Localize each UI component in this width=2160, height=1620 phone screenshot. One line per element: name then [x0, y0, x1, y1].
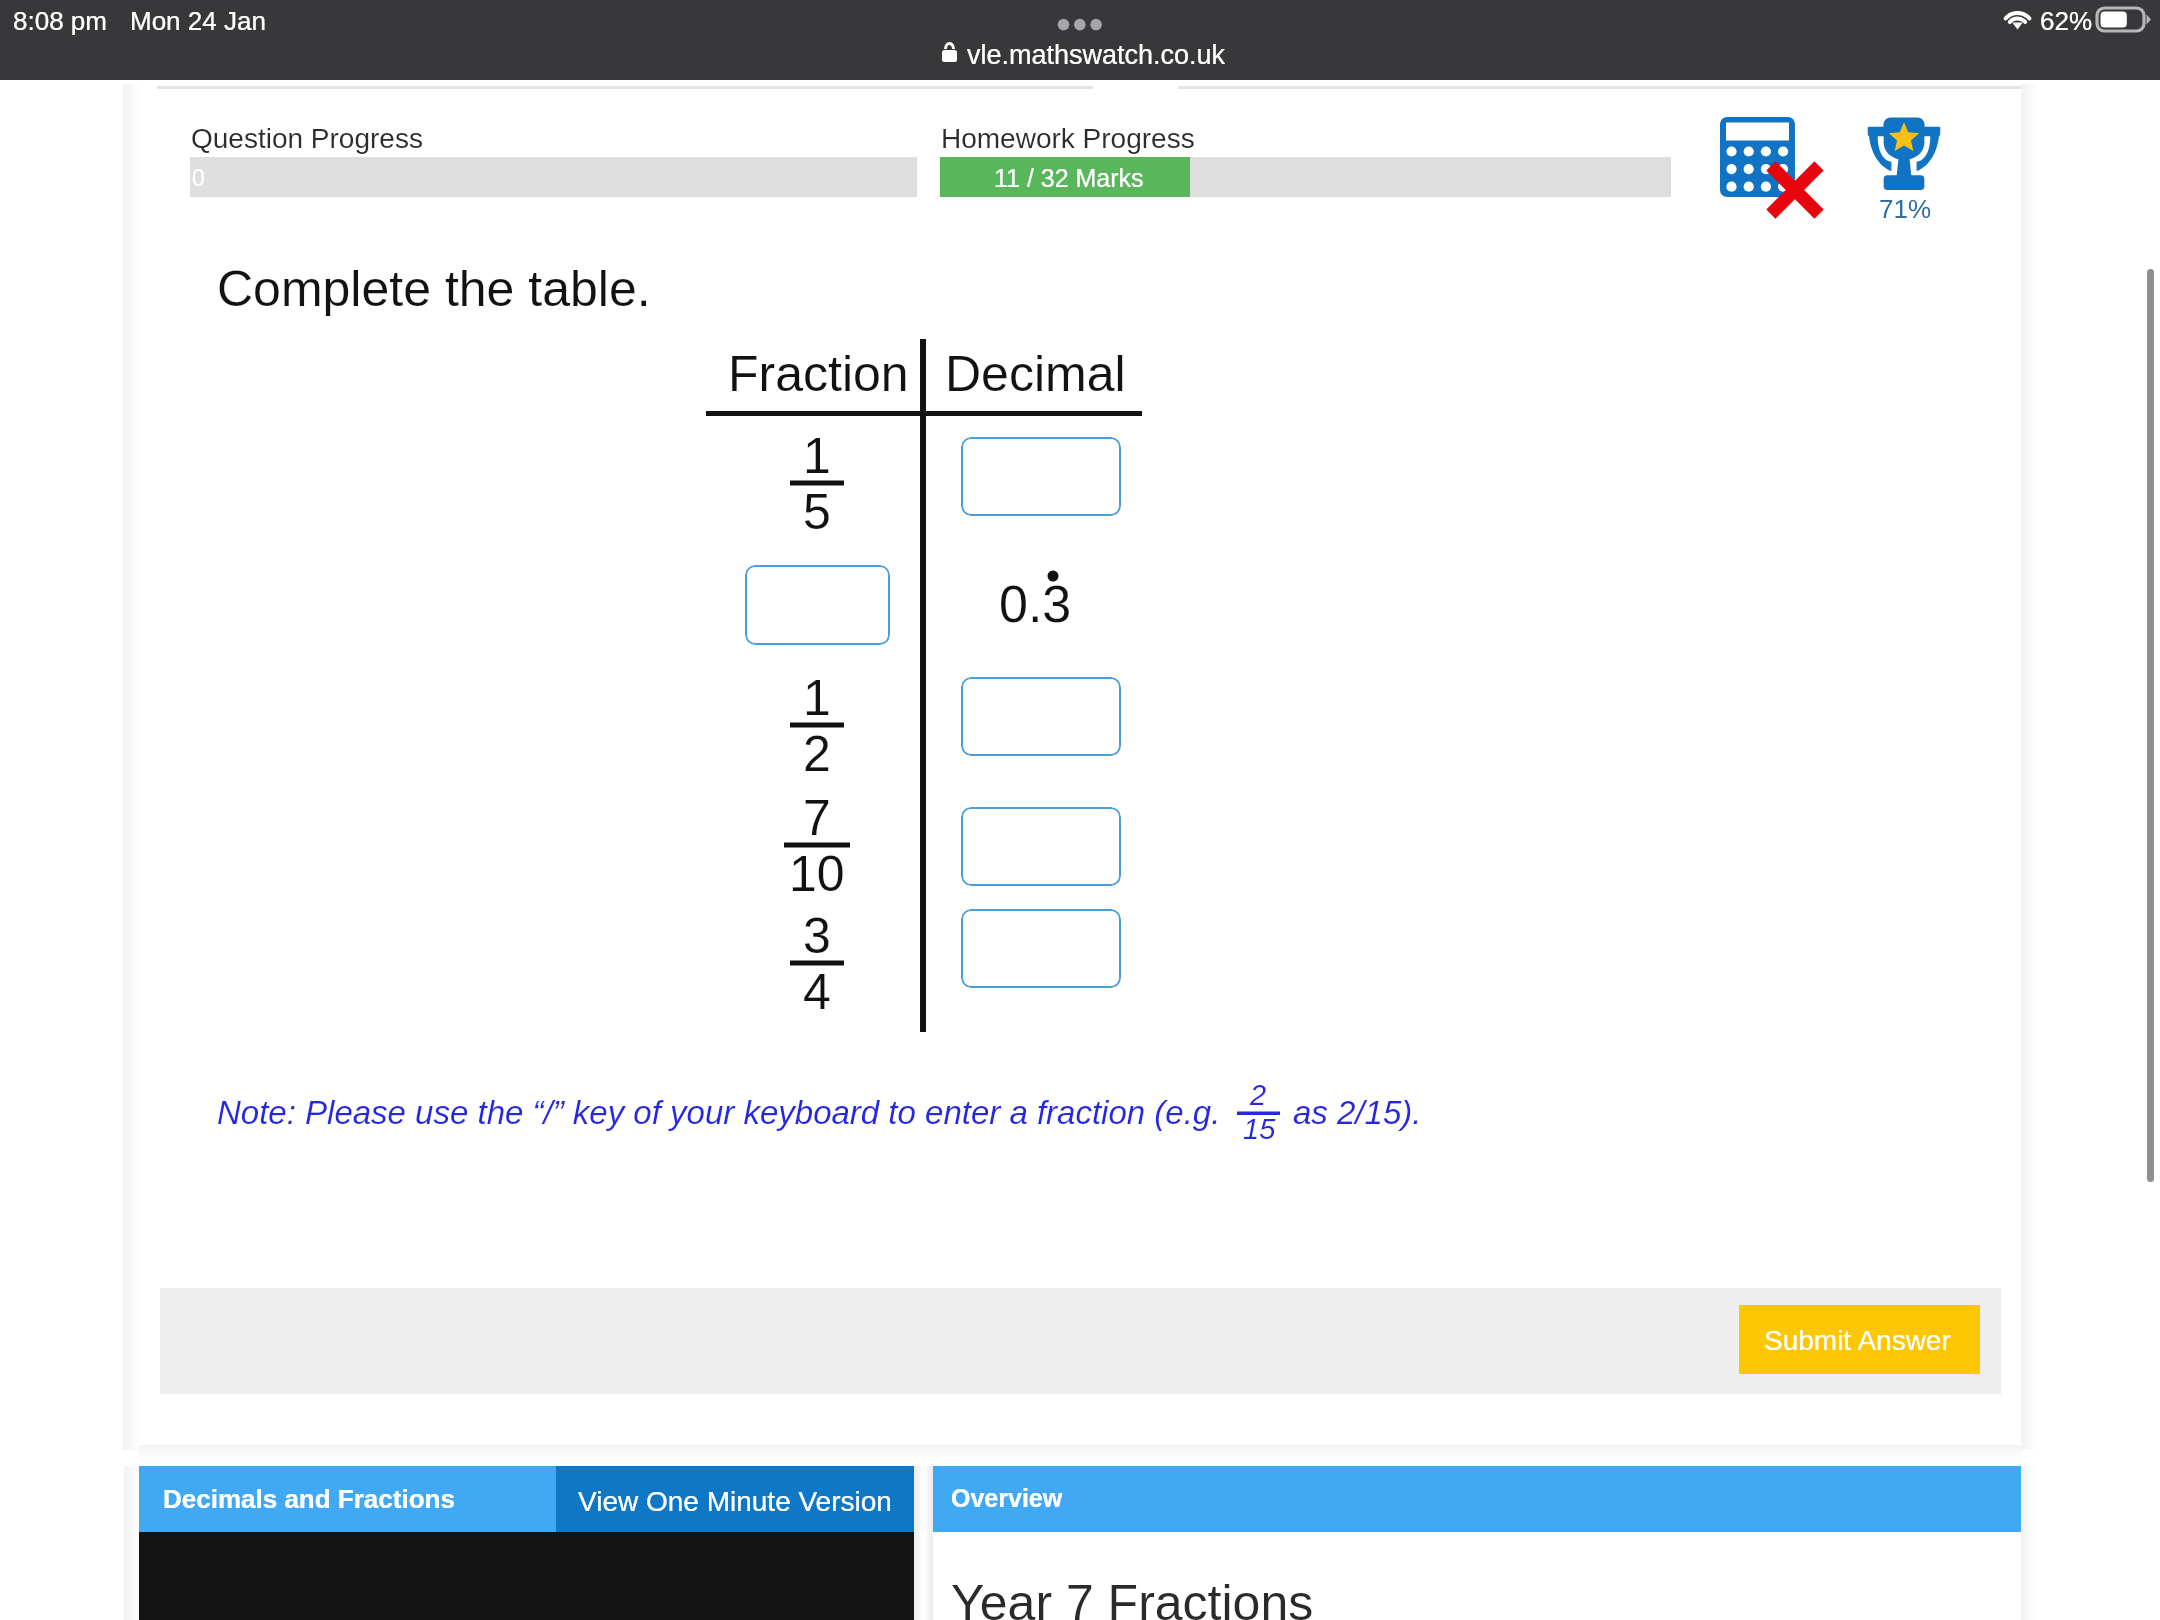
staticText: 1: [803, 670, 831, 726]
staticText: 1: [803, 428, 831, 484]
button[interactable]: [961, 807, 1121, 886]
staticText: 62%: [2040, 6, 2093, 35]
staticText: Submit Answer: [1764, 1325, 1951, 1356]
staticText: 7: [803, 790, 831, 846]
staticText: 0.3: [999, 575, 1072, 633]
staticText: Year 7 Fractions: [951, 1575, 1314, 1620]
staticText: vle.mathswatch.co.uk: [967, 40, 1226, 70]
button[interactable]: Overview: [933, 1466, 2021, 1532]
button[interactable]: Submit Answer: [1739, 1305, 1980, 1374]
staticText: Decimals and Fractions: [163, 1484, 455, 1513]
button[interactable]: Homework score 71 percent: [1867, 116, 1941, 220]
button[interactable]: Calculator not allowed: [1718, 115, 1816, 211]
staticText: 2: [1250, 1079, 1267, 1111]
staticText: Complete the table.: [217, 261, 651, 317]
staticText: Fraction: [728, 346, 909, 402]
button[interactable]: [745, 565, 890, 645]
staticText: 5: [803, 484, 831, 540]
staticText: as 2/15).: [1293, 1094, 1422, 1131]
button[interactable]: View One Minute Version: [556, 1466, 914, 1532]
staticText: Question Progress: [191, 123, 423, 154]
staticText: 11 / 32 Marks: [994, 164, 1144, 192]
button[interactable]: Decimals and Fractions: [139, 1466, 556, 1532]
staticText: Decimal: [945, 346, 1126, 402]
staticText: 71%: [1879, 194, 1932, 223]
staticText: 2: [803, 726, 831, 782]
staticText: View One Minute Version: [578, 1486, 892, 1517]
button[interactable]: [961, 677, 1121, 756]
staticText: Mon 24 Jan: [130, 6, 266, 35]
staticText: 3: [803, 908, 831, 964]
button[interactable]: [961, 909, 1121, 988]
staticText: 15: [1243, 1113, 1276, 1145]
staticText: 8:08 pm: [13, 6, 107, 35]
staticText: Note: Please use the “/” key of your key…: [217, 1094, 1221, 1131]
staticText: 10: [789, 846, 845, 902]
staticText: 4: [803, 964, 831, 1020]
staticText: Overview: [951, 1484, 1063, 1512]
button[interactable]: [961, 437, 1121, 516]
staticText: 0: [192, 165, 205, 191]
staticText: Homework Progress: [941, 123, 1195, 154]
